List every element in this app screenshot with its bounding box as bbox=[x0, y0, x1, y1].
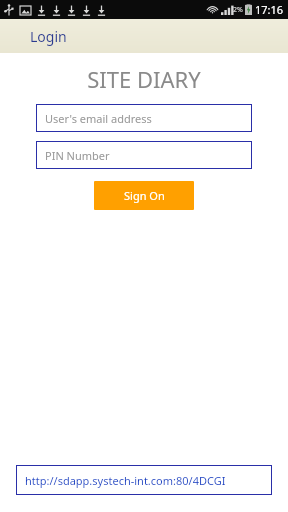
staticText: PIN Number bbox=[45, 148, 110, 163]
staticText: Login bbox=[30, 27, 67, 46]
staticText: SITE DIARY bbox=[87, 64, 201, 94]
button[interactable]: PIN Number bbox=[36, 141, 252, 169]
staticText: 17:16 bbox=[255, 2, 284, 17]
staticText: 2% bbox=[233, 5, 243, 15]
button[interactable]: User's email address bbox=[36, 104, 252, 132]
button[interactable]: http://sdapp.systech-int.com:80/4DCGI bbox=[16, 465, 272, 495]
button[interactable]: Sign On bbox=[94, 181, 194, 210]
staticText: Sign On bbox=[124, 188, 165, 203]
staticText: http://sdapp.systech-int.com:80/4DCGI bbox=[25, 473, 226, 488]
staticText: User's email address bbox=[45, 111, 152, 126]
